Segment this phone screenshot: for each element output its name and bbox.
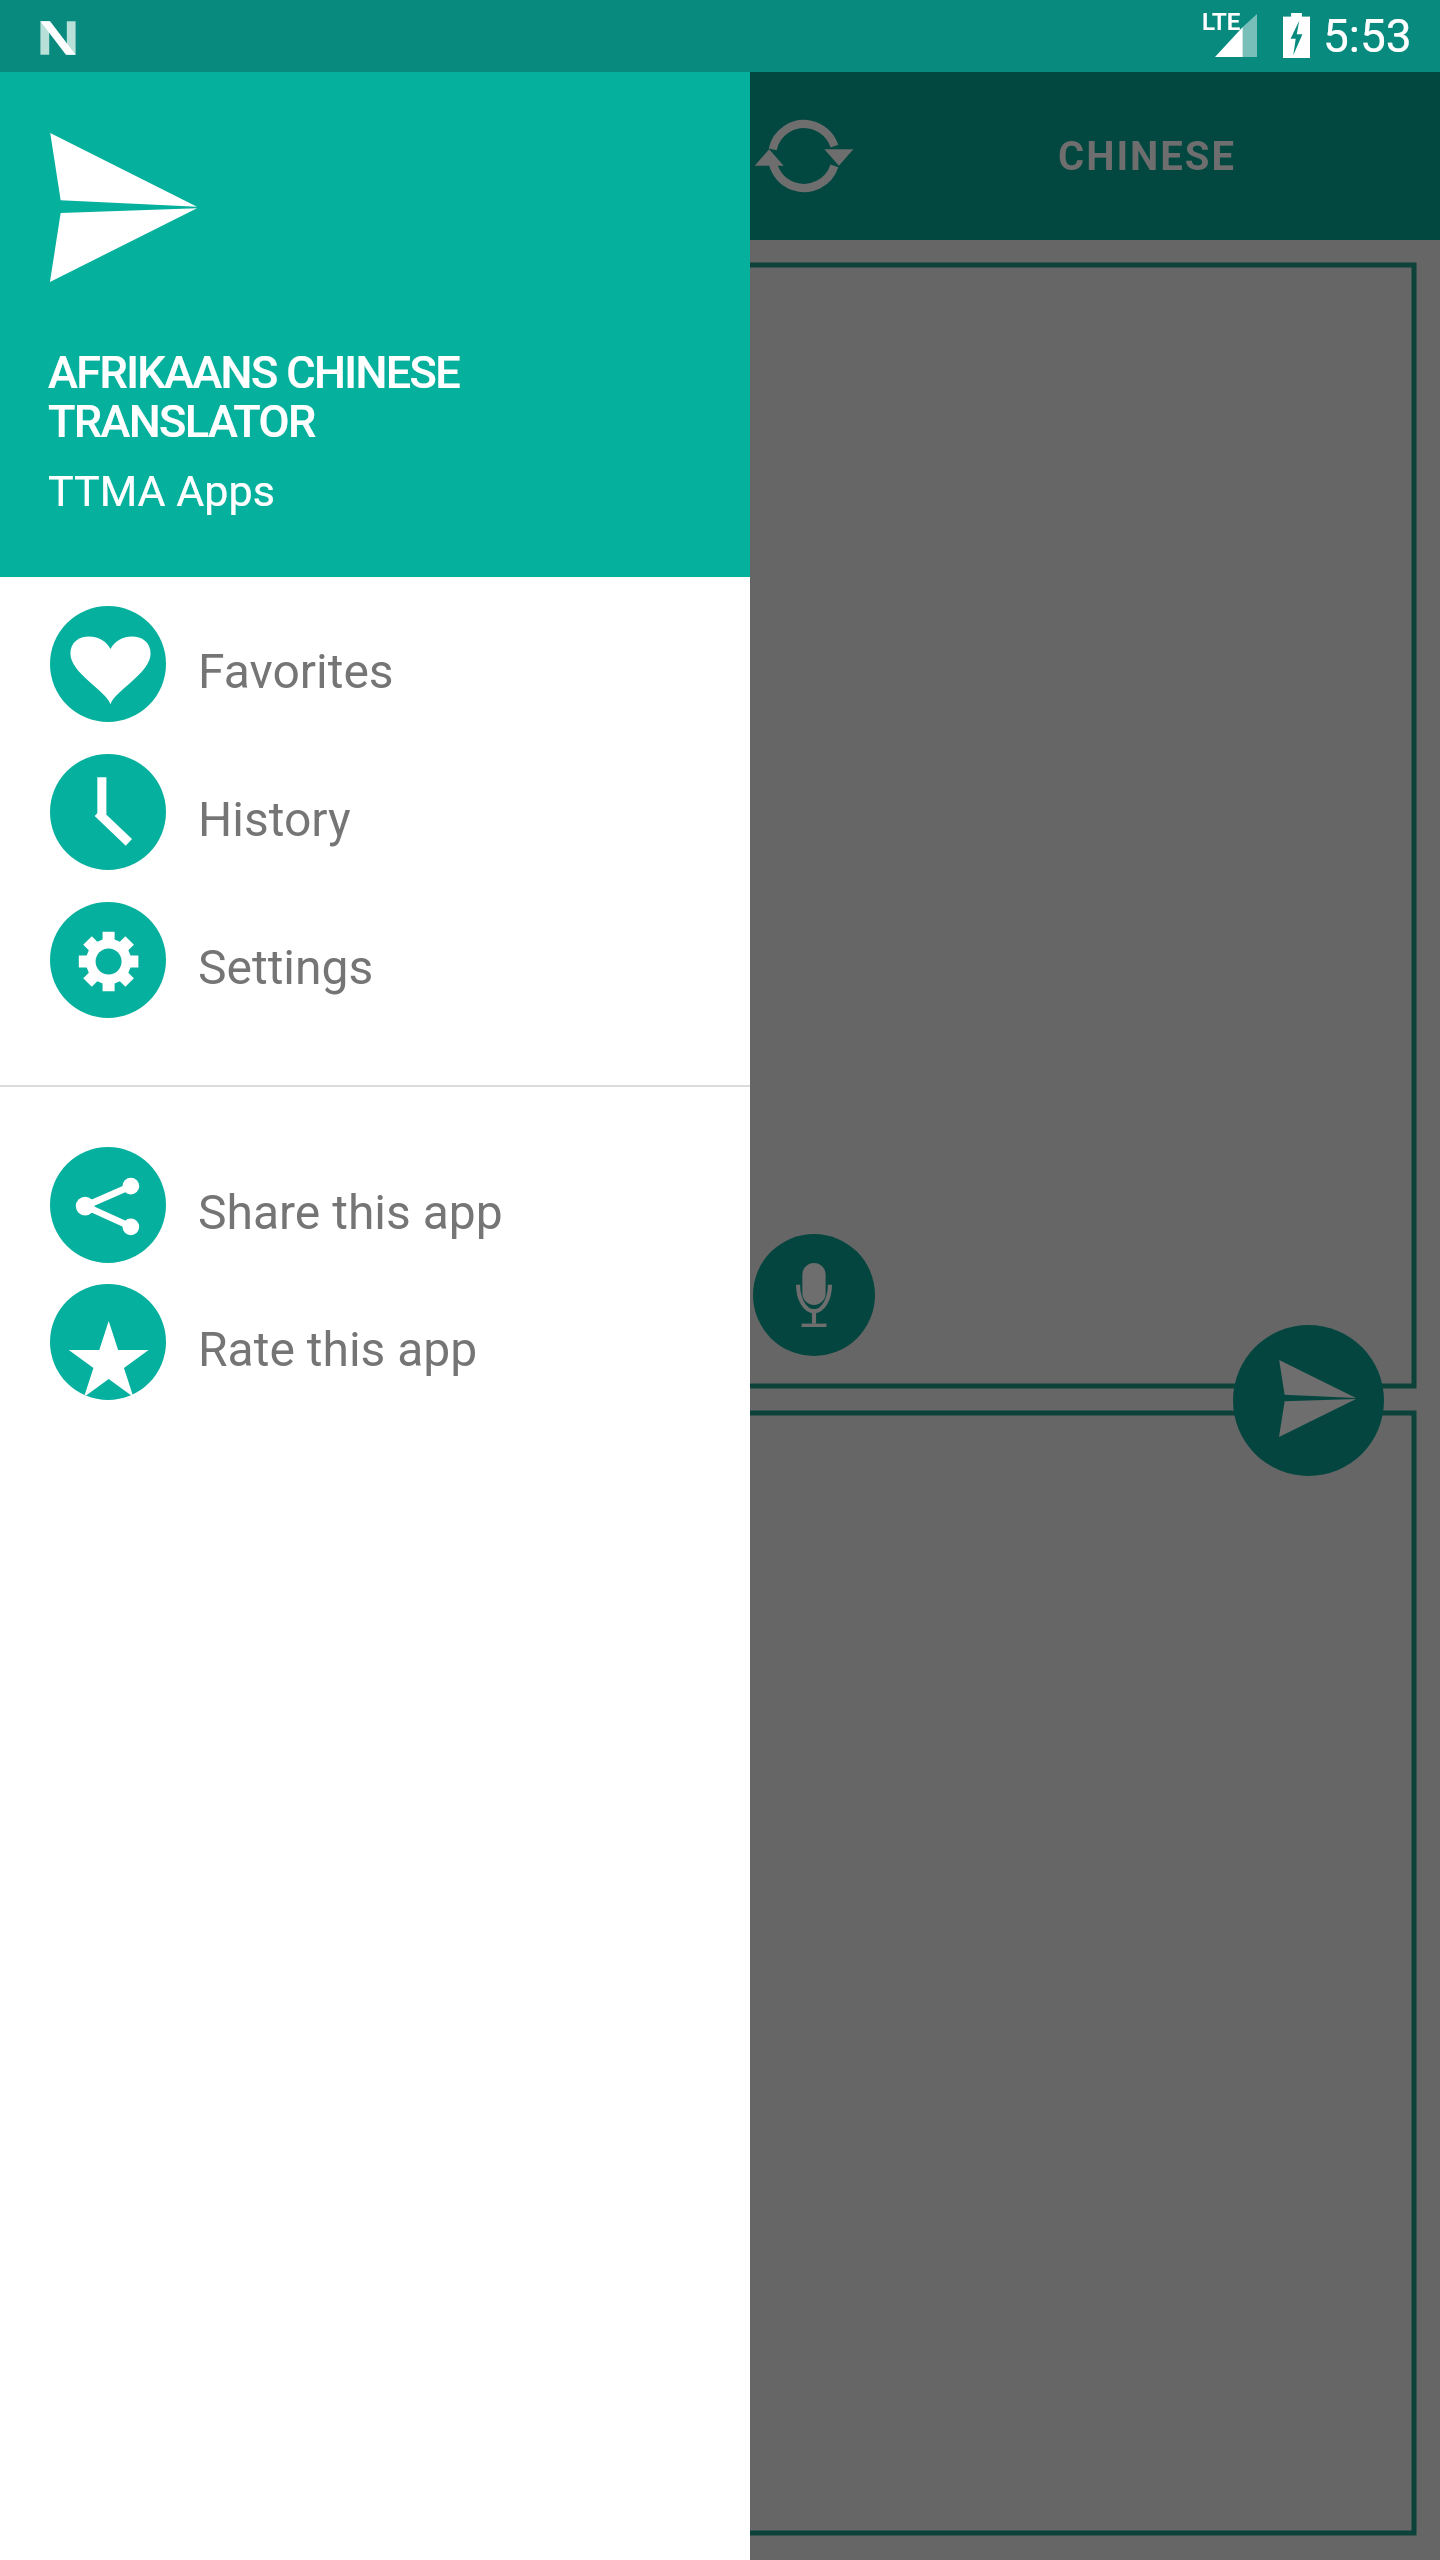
button[interactable]: Settings (0, 886, 750, 1034)
staticText: AFRIKAANS CHINESE TRANSLATOR (48, 346, 460, 448)
staticText: Settings (198, 939, 374, 995)
button[interactable]: History (0, 738, 750, 886)
staticText: Favorites (198, 643, 394, 699)
button[interactable]: Rate this app (0, 1273, 750, 1410)
button[interactable]: Translate (1233, 1325, 1384, 1476)
button[interactable]: Share this app (0, 1136, 750, 1273)
button[interactable]: Afrikaans text input (26, 265, 1414, 1386)
button[interactable]: Swap languages (738, 86, 878, 226)
button[interactable]: CHINESE (897, 72, 1397, 240)
button[interactable]: Chinese translation output (26, 1413, 1414, 2533)
button[interactable]: Favorites (0, 590, 750, 738)
staticText: TTMA Apps (48, 466, 275, 516)
staticText: CHINESE (1058, 133, 1236, 180)
button[interactable]: Voice input (753, 1234, 875, 1356)
staticText: Rate this app (198, 1321, 478, 1377)
staticText: History (198, 791, 351, 847)
staticText: Share this app (198, 1184, 503, 1240)
staticText: 5:53 (1323, 9, 1412, 63)
staticText: LTE (1202, 8, 1241, 36)
